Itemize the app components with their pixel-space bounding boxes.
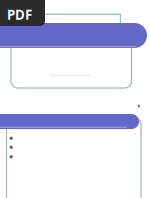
staticText: PDF [7,6,32,23]
button[interactable]: PDF [0,0,45,26]
